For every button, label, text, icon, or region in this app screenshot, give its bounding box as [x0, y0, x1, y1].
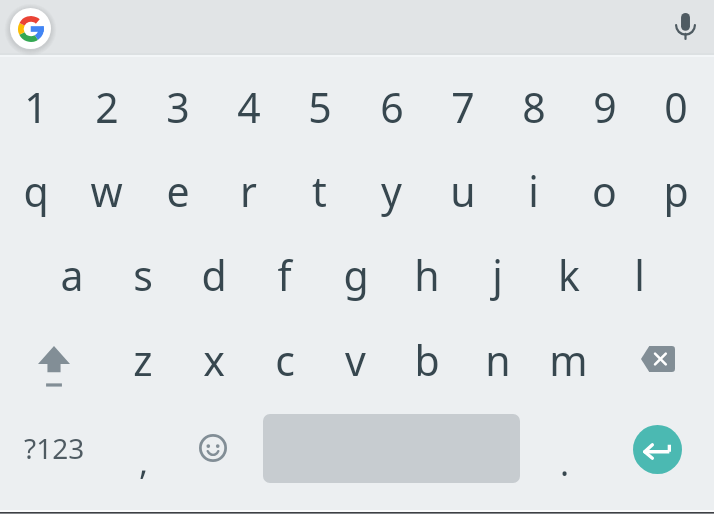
button[interactable]: t [284, 149, 355, 233]
staticText: y [381, 163, 402, 219]
button[interactable]: o [569, 149, 640, 233]
button[interactable]: k [533, 233, 604, 317]
staticText: , [139, 439, 149, 485]
button[interactable]: w [71, 149, 142, 233]
button[interactable]: r [213, 149, 284, 233]
button[interactable]: Emoji [178, 402, 249, 486]
staticText: e [166, 163, 190, 219]
staticText: 5 [308, 79, 332, 135]
staticText: d [201, 247, 227, 303]
staticText: 8 [522, 79, 546, 135]
staticText: n [485, 332, 511, 388]
button[interactable]: Space [249, 402, 533, 486]
button[interactable]: 3 [142, 65, 213, 149]
button[interactable]: d [178, 233, 249, 317]
staticText: 9 [593, 79, 617, 135]
staticText: 2 [95, 79, 119, 135]
button[interactable]: 4 [213, 65, 284, 149]
staticText: ?123 [24, 429, 85, 467]
staticText: m [549, 332, 588, 388]
button[interactable]: u [427, 149, 498, 233]
staticText: f [277, 247, 292, 303]
button[interactable]: n [462, 318, 533, 402]
button[interactable]: Google search [7, 5, 54, 52]
button[interactable]: 2 [71, 65, 142, 149]
button[interactable]: p [640, 149, 711, 233]
button[interactable]: Backspace [604, 318, 711, 402]
button[interactable]: a [36, 233, 107, 317]
staticText: r [240, 163, 257, 219]
button[interactable]: g [320, 233, 391, 317]
button[interactable]: v [320, 318, 391, 402]
staticText: 7 [451, 79, 475, 135]
staticText: u [450, 163, 476, 219]
button[interactable]: 8 [498, 65, 569, 149]
staticText: p [663, 163, 689, 219]
staticText: a [60, 247, 84, 303]
staticText: v [345, 332, 366, 388]
button[interactable]: 1 [0, 65, 71, 149]
button[interactable]: Shift [0, 318, 107, 402]
button[interactable]: y [356, 149, 427, 233]
button[interactable]: f [249, 233, 320, 317]
staticText: c [275, 332, 295, 388]
staticText: t [312, 163, 327, 219]
button[interactable]: Enter [604, 402, 711, 486]
button[interactable]: m [533, 318, 604, 402]
button[interactable]: 0 [640, 65, 711, 149]
staticText: z [133, 332, 153, 388]
button[interactable]: h [391, 233, 462, 317]
staticText: b [414, 332, 440, 388]
button[interactable]: c [249, 318, 320, 402]
button[interactable]: , [107, 402, 178, 486]
button[interactable]: b [391, 318, 462, 402]
button[interactable]: x [178, 318, 249, 402]
button[interactable]: j [462, 233, 533, 317]
button[interactable]: e [142, 149, 213, 233]
staticText: k [558, 247, 580, 303]
staticText: 3 [166, 79, 190, 135]
staticText: g [343, 247, 369, 303]
staticText: o [592, 163, 617, 219]
staticText: 6 [380, 79, 404, 135]
staticText: s [133, 247, 153, 303]
button[interactable]: 7 [427, 65, 498, 149]
staticText: 1 [24, 79, 48, 135]
button[interactable]: s [107, 233, 178, 317]
button[interactable]: Voice input [663, 4, 707, 51]
staticText: . [560, 440, 570, 486]
button[interactable]: 9 [569, 65, 640, 149]
button[interactable]: q [0, 149, 71, 233]
staticText: l [634, 247, 645, 303]
staticText: q [23, 163, 49, 219]
staticText: j [492, 247, 503, 303]
button[interactable]: . [533, 402, 604, 486]
staticText: h [414, 247, 440, 303]
button[interactable]: 6 [356, 65, 427, 149]
button[interactable]: l [604, 233, 675, 317]
staticText: i [528, 163, 539, 219]
button[interactable]: ?123 [0, 402, 107, 486]
staticText: x [203, 332, 225, 388]
staticText: 0 [664, 79, 688, 135]
button[interactable]: i [498, 149, 569, 233]
button[interactable]: 5 [284, 65, 355, 149]
staticText: w [90, 163, 123, 219]
button[interactable]: z [107, 318, 178, 402]
staticText: 4 [237, 79, 261, 135]
